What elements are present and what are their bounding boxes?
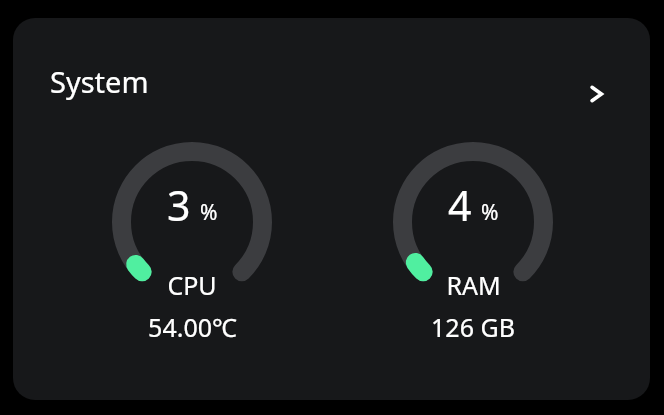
staticText: 54.00℃ (148, 310, 237, 342)
staticText: 4 (448, 177, 472, 233)
staticText: % (200, 198, 218, 227)
staticText: 126 GB (431, 310, 515, 342)
button[interactable]: System (13, 18, 650, 400)
staticText: CPU (167, 268, 217, 300)
button[interactable]: Open System details (570, 66, 626, 122)
staticText: 3 (167, 177, 191, 233)
button[interactable]: RAM usage 4 percent (393, 142, 553, 302)
staticText: System (50, 62, 149, 101)
staticText: % (481, 198, 499, 227)
button[interactable]: CPU usage 3 percent (112, 142, 272, 302)
staticText: RAM (446, 268, 501, 300)
